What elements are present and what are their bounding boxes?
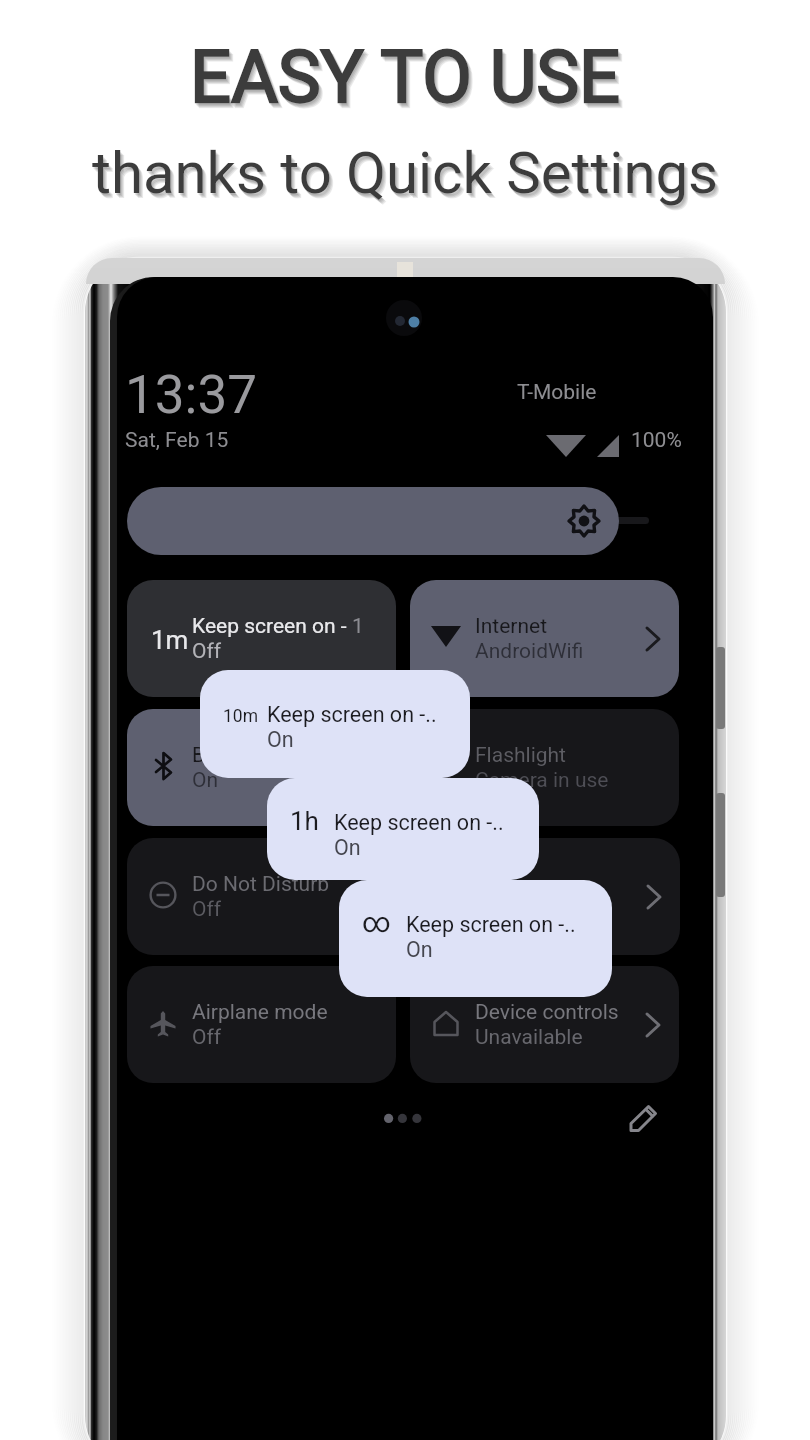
staticText: 13:37 (125, 364, 257, 426)
staticText: Sat, Feb 15 (125, 428, 229, 453)
button[interactable]: Brightness (127, 487, 619, 555)
button[interactable]: Internet (410, 580, 679, 697)
button[interactable]: Edit tiles (629, 1105, 657, 1133)
staticText: 1 (352, 614, 364, 639)
staticText: 100% (631, 428, 682, 453)
button[interactable]: Flashlight (410, 709, 679, 826)
staticText: ∞ (362, 906, 391, 939)
staticText: On (334, 835, 361, 860)
staticText: Device controls (475, 1000, 619, 1025)
button[interactable]: 1m (127, 580, 396, 697)
button[interactable]: Device controls (410, 966, 679, 1083)
staticText: Keep screen on -.. (406, 912, 576, 937)
staticText: Flashlight (475, 743, 566, 768)
staticText: On (192, 768, 219, 793)
staticText: Off (192, 639, 222, 664)
button[interactable]: Airplane mode (127, 966, 396, 1083)
staticText: EASY TO USE (2, 38, 810, 122)
button[interactable]: 10m (200, 670, 470, 778)
staticText: On (406, 937, 433, 962)
staticText: Keep screen on -.. (267, 702, 437, 727)
staticText: 10m (223, 706, 259, 727)
button[interactable]: ∞ (339, 880, 612, 997)
staticText: AndroidWifi (475, 639, 584, 664)
staticText: thanks to Quick Settings (0, 139, 810, 207)
staticText: On (267, 727, 294, 752)
staticText: Keep screen on - (192, 614, 352, 639)
staticText: EASY TO USE (3, 39, 810, 123)
staticText: Camera in use (475, 768, 609, 793)
staticText: 1h (290, 806, 319, 836)
staticText: T-Mobile (517, 380, 597, 405)
button[interactable]: Do Not Disturb (127, 838, 680, 955)
button[interactable]: Bluetooth (127, 709, 396, 826)
staticText: thanks to Quick Settings (1, 141, 810, 209)
staticText: thanks to Quick Settings (4, 144, 810, 212)
staticText: Internet (475, 614, 548, 639)
staticText: Unavailable (475, 1025, 583, 1050)
staticText: Do Not Disturb (192, 872, 330, 897)
staticText: EASY TO USE (4, 40, 810, 124)
staticText: Off (192, 1025, 222, 1050)
staticText: Keep screen on -.. (334, 810, 504, 835)
staticText: Airplane mode (192, 1000, 328, 1025)
staticText: Bluetooth (192, 743, 282, 768)
staticText: thanks to Quick Settings (2, 142, 810, 210)
staticText: EASY TO USE (1, 37, 810, 121)
staticText: EASY TO USE (0, 35, 810, 119)
staticText: thanks to Quick Settings (3, 143, 810, 211)
staticText: 1m (151, 625, 189, 655)
staticText: Off (192, 897, 222, 922)
button[interactable]: 1h (267, 778, 539, 880)
